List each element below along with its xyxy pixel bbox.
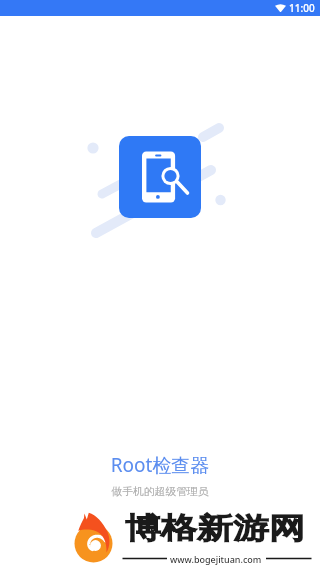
staticText: www.bogejituan.com <box>170 553 262 565</box>
staticText: Root检查器 <box>0 452 320 478</box>
staticText: 做手机的超级管理员 <box>0 485 320 499</box>
button[interactable]: Root Checker app icon <box>119 136 201 218</box>
staticText: 博格新游网 <box>125 510 305 546</box>
staticText: 11:00 <box>289 1 315 15</box>
